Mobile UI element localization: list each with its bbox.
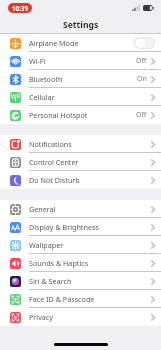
staticText: Off: [136, 56, 147, 66]
staticText: Wallpaper: [29, 240, 64, 250]
button[interactable]: Siri & Search: [0, 272, 161, 290]
staticText: Control Center: [29, 157, 79, 167]
staticText: Settings: [63, 19, 99, 31]
staticText: Face ID & Passcode: [29, 294, 95, 304]
staticText: Personal Hotspot: [29, 110, 88, 120]
staticText: Notifications: [29, 139, 72, 149]
button[interactable]: Airplane Mode: [0, 34, 161, 52]
staticText: 10:39: [12, 4, 28, 12]
staticText: Siri & Search: [29, 276, 72, 286]
staticText: Display & Brightness: [29, 222, 99, 232]
button[interactable]: Control Center: [0, 153, 161, 171]
staticText: Off: [136, 110, 147, 120]
staticText: Privacy: [29, 312, 53, 322]
button[interactable]: Wallpaper: [0, 236, 161, 254]
staticText: Airplane Mode: [29, 38, 79, 48]
staticText: Wi-Fi: [29, 56, 46, 66]
button[interactable]: Do Not Disturb: [0, 171, 161, 189]
button[interactable]: Cellular: [0, 88, 161, 106]
button[interactable]: Notifications: [0, 135, 161, 153]
staticText: Cellular: [29, 92, 55, 102]
button[interactable]: Personal Hotspot: [0, 106, 161, 124]
button[interactable]: Privacy: [0, 308, 161, 326]
button[interactable]: Airplane Mode toggle: [134, 37, 155, 49]
button[interactable]: Face ID & Passcode: [0, 290, 161, 308]
button[interactable]: Sounds & Haptics: [0, 254, 161, 272]
button[interactable]: General: [0, 200, 161, 218]
staticText: On: [137, 74, 147, 84]
button[interactable]: Wi-Fi: [0, 52, 161, 70]
staticText: General: [29, 204, 56, 214]
button[interactable]: Bluetooth: [0, 70, 161, 88]
staticText: Sounds & Haptics: [29, 258, 89, 268]
staticText: Bluetooth: [29, 74, 63, 84]
staticText: Do Not Disturb: [29, 175, 80, 185]
button[interactable]: Display & Brightness: [0, 218, 161, 236]
